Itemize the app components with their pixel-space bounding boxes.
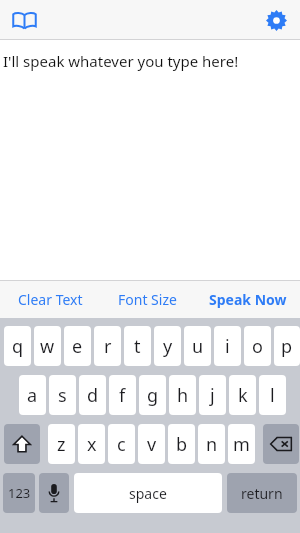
button[interactable]: Settings [259,3,293,37]
staticText: Speak Now [209,290,287,309]
staticText: a [27,383,38,408]
button[interactable]: c [108,424,135,464]
button[interactable]: m [228,424,255,464]
button[interactable]: l [259,375,286,415]
button[interactable]: p [274,326,300,366]
staticText: d [87,383,99,408]
button[interactable]: z [48,424,75,464]
button[interactable]: Speak Now [195,281,300,318]
staticText: r [104,334,112,359]
button[interactable]: Dictation [39,473,69,513]
button[interactable]: r [94,326,121,366]
button[interactable]: Clear Text [0,281,100,318]
button[interactable]: k [229,375,256,415]
staticText: i [225,334,230,359]
button[interactable]: j [199,375,226,415]
button[interactable]: Backspace [263,424,299,464]
button[interactable]: h [169,375,196,415]
staticText: z [57,432,66,457]
button[interactable]: Shift [4,424,40,464]
staticText: j [210,383,215,408]
staticText: y [163,334,173,359]
staticText: m [233,432,250,457]
button[interactable]: x [78,424,105,464]
staticText: c [117,432,126,457]
staticText: q [12,334,24,359]
button[interactable]: v [138,424,165,464]
staticText: return [241,484,283,503]
button[interactable]: Font Size [100,281,195,318]
button[interactable]: i [214,326,241,366]
button[interactable]: f [109,375,136,415]
staticText: x [87,432,97,457]
button[interactable]: I'll speak whatever you type here! [0,40,300,280]
staticText: k [238,383,248,408]
button[interactable]: return [227,473,297,513]
staticText: o [252,334,263,359]
button[interactable]: y [154,326,181,366]
button[interactable]: o [244,326,271,366]
button[interactable]: n [198,424,225,464]
staticText: Clear Text [18,290,83,309]
staticText: g [147,383,159,408]
staticText: e [72,334,83,359]
staticText: n [206,432,218,457]
staticText: Font Size [118,290,177,309]
staticText: I'll speak whatever you type here! [3,51,239,71]
button[interactable]: g [139,375,166,415]
staticText: h [177,383,189,408]
staticText: t [134,334,141,359]
button[interactable]: b [168,424,195,464]
button[interactable]: a [19,375,46,415]
button[interactable]: u [184,326,211,366]
staticText: f [119,383,126,408]
staticText: w [40,334,55,359]
staticText: 123 [8,484,31,502]
button[interactable]: Library [7,3,41,37]
staticText: p [281,334,293,359]
staticText: space [129,484,167,503]
button[interactable]: e [64,326,91,366]
staticText: l [270,383,275,408]
button[interactable]: t [124,326,151,366]
button[interactable]: d [79,375,106,415]
button[interactable]: space [74,473,222,513]
staticText: s [58,383,67,408]
staticText: u [192,334,204,359]
button[interactable]: 123 [3,473,35,513]
staticText: b [176,432,188,457]
button[interactable]: s [49,375,76,415]
button[interactable]: q [4,326,31,366]
staticText: v [147,432,157,457]
button[interactable]: w [34,326,61,366]
